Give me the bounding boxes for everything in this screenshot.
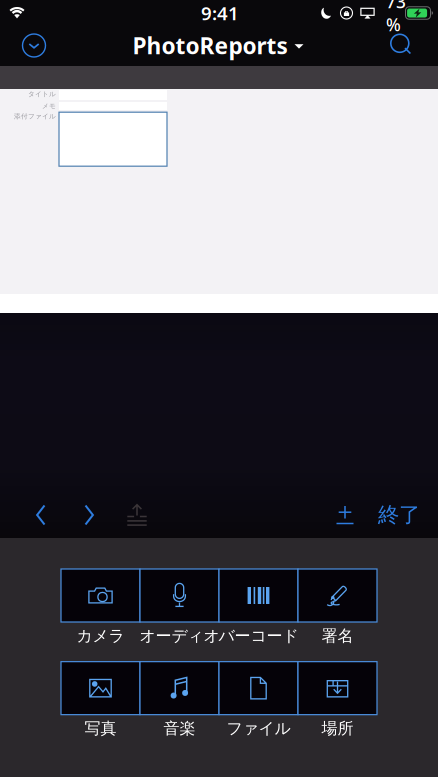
staticText: 写真	[84, 719, 116, 738]
staticText: 73%	[386, 0, 406, 36]
staticText: PhotoReports	[132, 30, 287, 60]
staticText: 9:41	[201, 1, 239, 25]
staticText: オーディオ	[139, 626, 219, 646]
button[interactable]: Forward	[65, 492, 113, 538]
staticText: ファイル	[226, 719, 290, 738]
staticText: 終了	[378, 502, 420, 528]
staticText: メモ	[42, 102, 56, 110]
staticText: 署名	[321, 626, 353, 646]
staticText: 添付ファイル	[14, 112, 56, 120]
button[interactable]: 終了	[369, 492, 432, 538]
button[interactable]: オーディオ	[140, 569, 219, 646]
button[interactable]: Back	[17, 492, 65, 538]
button[interactable]: Share	[113, 492, 161, 538]
button[interactable]: PhotoReports	[132, 25, 303, 65]
button[interactable]: Collapse	[12, 25, 56, 65]
button[interactable]: カメラ	[61, 569, 140, 646]
button[interactable]: 場所	[298, 662, 377, 738]
button[interactable]: ファイル	[219, 662, 298, 738]
button[interactable]: Search	[380, 25, 424, 65]
button[interactable]: Add	[321, 492, 369, 538]
staticText: 場所	[321, 719, 353, 738]
staticText: タイトル	[28, 90, 56, 98]
staticText: バーコード	[218, 626, 298, 646]
button[interactable]: 音楽	[140, 662, 219, 738]
staticText: 音楽	[163, 719, 195, 738]
button[interactable]: 署名	[298, 569, 377, 646]
button[interactable]: バーコード	[219, 569, 298, 646]
button[interactable]: 写真	[61, 662, 140, 738]
staticText: カメラ	[76, 626, 124, 646]
